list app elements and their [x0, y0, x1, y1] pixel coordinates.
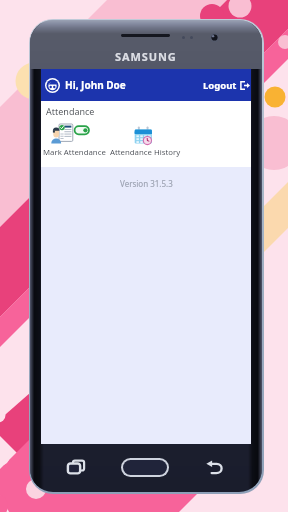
staticText: Hi, John Doe [65, 78, 126, 92]
staticText: Logout [203, 79, 237, 92]
button[interactable]: Back [206, 459, 223, 475]
button[interactable]: Attendance History [100, 119, 190, 163]
button[interactable]: Recent apps [67, 459, 85, 475]
button[interactable]: Mark Attendance [29, 119, 119, 163]
staticText: Attendance History [110, 147, 181, 158]
staticText: Attendance [46, 105, 95, 117]
staticText: Mark Attendance [43, 147, 106, 158]
button[interactable]: Home [121, 458, 169, 477]
staticText: SAMSUNG [115, 49, 177, 64]
button[interactable]: Logout [197, 73, 251, 98]
staticText: Version 31.5.3 [120, 178, 173, 189]
